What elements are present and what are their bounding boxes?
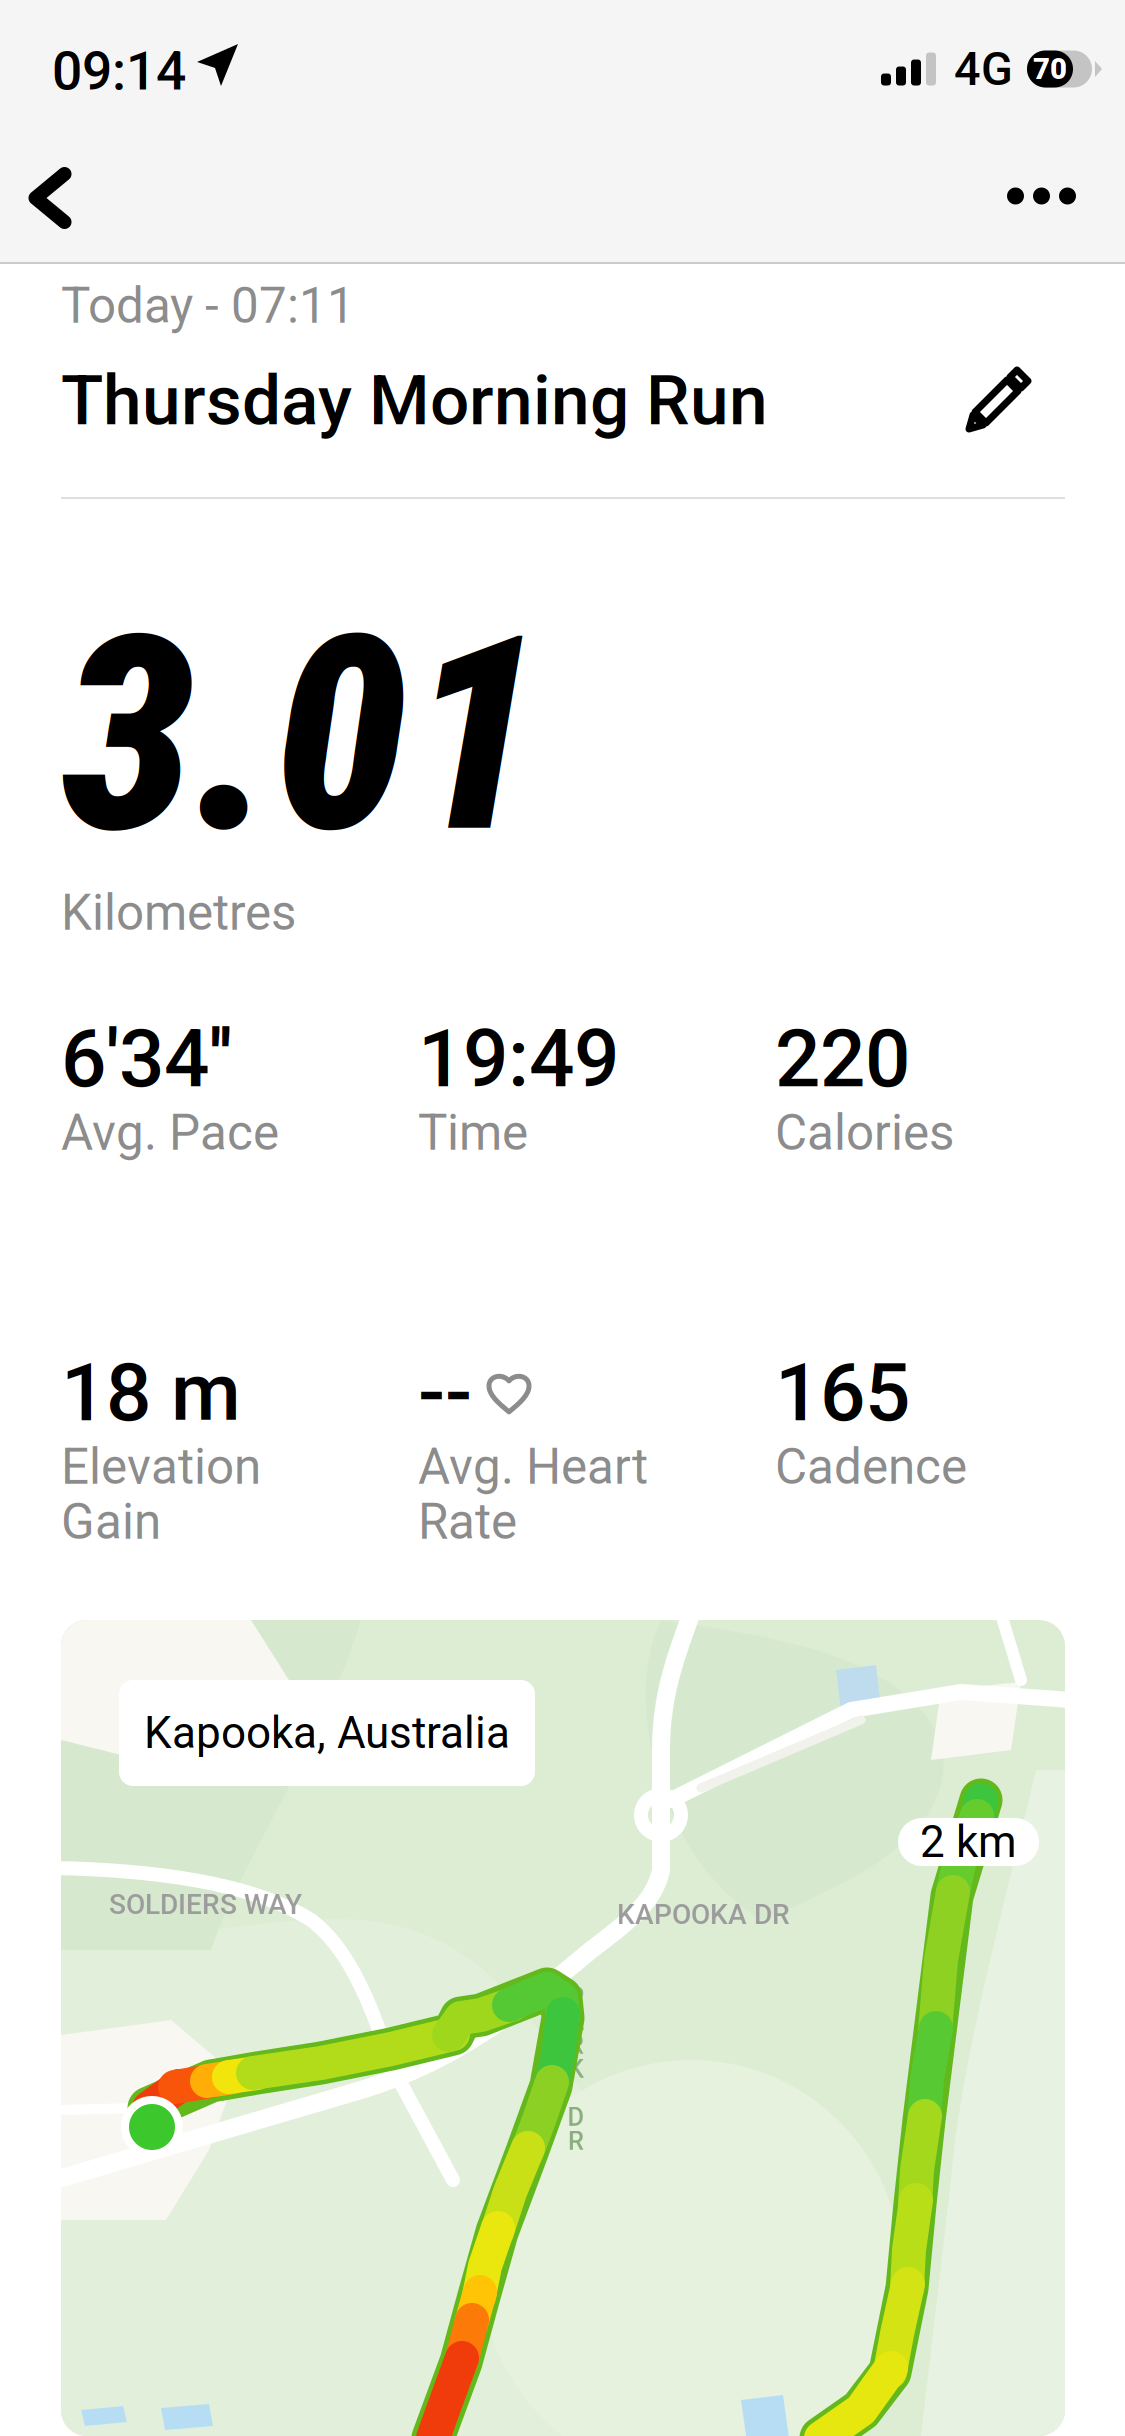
staticText: Time — [418, 1104, 528, 1162]
staticText: Gain — [61, 1493, 161, 1551]
staticText — [573, 2078, 579, 2108]
staticText: 19:49 — [418, 1012, 619, 1106]
staticText: Avg. Pace — [61, 1104, 279, 1162]
staticText: 165 — [775, 1346, 910, 1440]
staticText: 70 — [1033, 52, 1067, 86]
staticText: 2 km — [920, 1816, 1017, 1868]
staticText: D — [567, 2102, 584, 2132]
staticText: A — [567, 2006, 584, 2036]
staticText: R — [568, 2126, 584, 2156]
button[interactable]: More options — [995, 148, 1105, 244]
staticText: -- — [418, 1346, 472, 1440]
staticText: P — [568, 1982, 584, 2012]
staticText: 18 m — [61, 1346, 241, 1440]
staticText: 220 — [775, 1012, 910, 1106]
staticText: Today - 07:11 — [61, 277, 355, 335]
staticText: Elevation — [61, 1438, 261, 1496]
staticText: Calories — [775, 1104, 954, 1162]
button[interactable]: Edit — [964, 364, 1034, 436]
staticText: Thursday Morning Run — [61, 360, 768, 441]
staticText: Cadence — [775, 1438, 967, 1496]
staticText: Kapooka, Australia — [144, 1707, 510, 1759]
staticText: 6'34'' — [61, 1012, 232, 1106]
staticText: Rate — [418, 1493, 517, 1551]
staticText: Avg. Heart — [418, 1438, 648, 1496]
staticText: K — [568, 2054, 584, 2084]
staticText: 4G — [954, 42, 1013, 96]
staticText: Kilometres — [61, 884, 296, 942]
staticText: SOLDIERS WAY — [109, 1888, 302, 1921]
staticText: 09:14 — [52, 40, 186, 102]
staticText: 3.01 — [61, 578, 542, 894]
staticText: R — [568, 2030, 584, 2060]
staticText: KAPOOKA DR — [617, 1898, 790, 1931]
button[interactable]: Back — [0, 150, 100, 246]
